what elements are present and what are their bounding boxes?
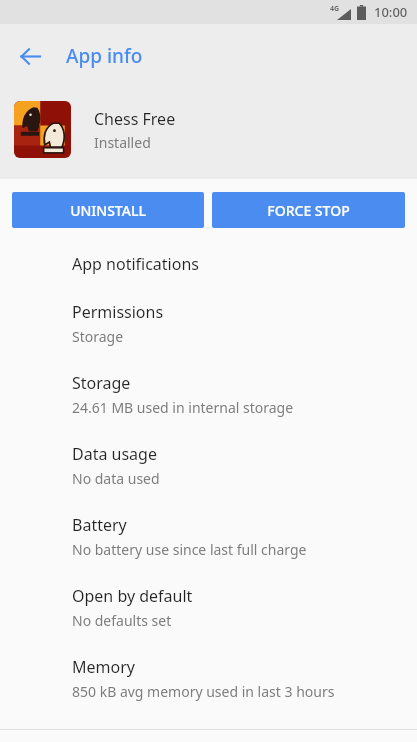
button[interactable]: Storage [0,359,417,430]
staticText: 4G [330,4,340,14]
button[interactable]: Back [8,34,52,78]
staticText: Storage [72,327,124,346]
staticText: Battery [72,514,127,536]
staticText: UNINSTALL [70,201,146,220]
staticText: Data usage [72,443,157,465]
staticText: Installed [94,133,151,152]
staticText: App info [66,43,143,69]
button[interactable]: Open by default [0,572,417,643]
staticText: No battery use since last full charge [72,540,307,559]
button[interactable]: Battery [0,501,417,572]
staticText: 24.61 MB used in internal storage [72,398,294,417]
staticText: Memory [72,656,135,678]
staticText: App notifications [72,253,199,275]
button[interactable]: FORCE STOP [212,192,405,228]
button[interactable]: Permissions [0,288,417,359]
button[interactable]: App notifications [0,240,417,288]
staticText: Open by default [72,585,193,607]
button[interactable]: Data usage [0,430,417,501]
staticText: 10:00 [374,3,408,21]
staticText: FORCE STOP [267,201,350,220]
button[interactable]: UNINSTALL [12,192,204,228]
staticText: 850 kB avg memory used in last 3 hours [72,682,335,701]
staticText: No data used [72,469,160,488]
staticText: Permissions [72,301,164,323]
staticText: No defaults set [72,611,172,630]
staticText: Storage [72,372,131,394]
staticText: Chess Free [94,108,176,130]
button[interactable]: Memory [0,643,417,714]
